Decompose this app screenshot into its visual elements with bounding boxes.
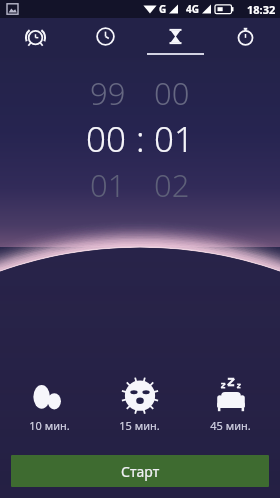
button[interactable]: 02 xyxy=(154,164,280,206)
button[interactable]: Старт xyxy=(11,455,269,487)
button[interactable]: Alarm xyxy=(0,18,70,58)
staticText: G xyxy=(159,2,167,16)
button[interactable]: Clock xyxy=(70,18,140,58)
button[interactable]: 99 xyxy=(0,72,126,114)
staticText: 02 xyxy=(154,164,190,206)
staticText: 00 xyxy=(154,72,190,114)
staticText: 01 xyxy=(90,164,126,206)
button[interactable]: Nap, 45 minutes xyxy=(185,375,276,435)
button[interactable]: 00 xyxy=(154,72,280,114)
staticText: 01 xyxy=(154,115,194,163)
staticText: : xyxy=(136,115,145,163)
button[interactable]: Face mask, 15 minutes xyxy=(94,375,185,435)
button[interactable]: 01 xyxy=(0,164,126,206)
staticText: 4G xyxy=(186,2,199,16)
button[interactable]: Eggs, 10 minutes xyxy=(4,375,94,435)
staticText: 10 мин. xyxy=(29,418,70,433)
staticText: 00 xyxy=(86,115,126,163)
staticText: 45 мин. xyxy=(210,418,251,433)
staticText xyxy=(136,164,145,206)
button[interactable]: Stopwatch xyxy=(210,18,280,58)
button[interactable]: 00 xyxy=(0,115,126,163)
staticText: 99 xyxy=(90,72,126,114)
staticText: 18:32 xyxy=(247,2,276,17)
button[interactable]: 01 xyxy=(154,115,280,163)
staticText: Старт xyxy=(121,462,160,481)
button[interactable]: Timer xyxy=(140,18,210,58)
staticText: 15 мин. xyxy=(119,418,160,433)
